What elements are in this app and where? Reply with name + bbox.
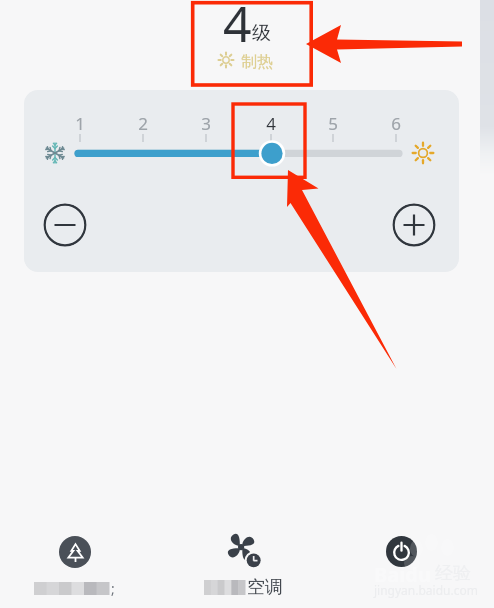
staticText: 制热 — [241, 52, 273, 70]
staticText: 4 — [223, 0, 252, 43]
staticText: Baidu — [374, 561, 431, 588]
staticText: 6 — [391, 112, 401, 134]
button[interactable]: Increase level — [392, 203, 436, 247]
staticText: 4 — [266, 112, 276, 134]
button[interactable]: Power — [351, 532, 451, 598]
staticText: jingyan.baidu.com — [374, 582, 478, 598]
staticText: ; — [111, 579, 115, 598]
staticText: 2 — [138, 112, 148, 134]
staticText: 级 — [252, 21, 271, 43]
staticText: 经验 — [435, 562, 471, 585]
staticText: 1 — [75, 112, 85, 134]
staticText: 5 — [328, 112, 338, 134]
button[interactable]: ; — [24, 532, 124, 598]
staticText: 3 — [201, 112, 211, 134]
button[interactable]: Decrease level — [43, 203, 87, 247]
staticText: 空调 — [247, 576, 283, 598]
button[interactable]: 空调 — [194, 532, 294, 598]
